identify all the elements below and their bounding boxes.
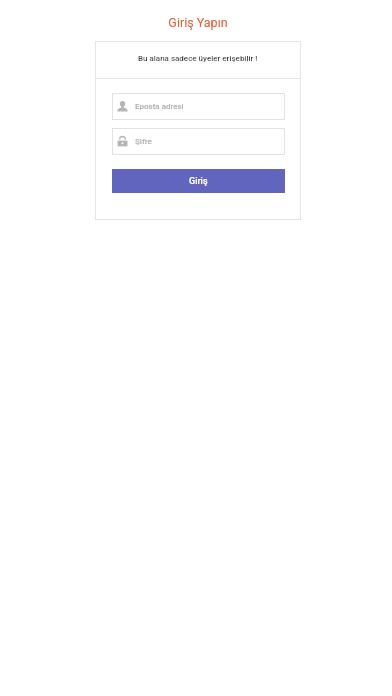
staticText: Giriş <box>189 176 208 187</box>
staticText: Eposta adresi <box>135 102 184 111</box>
other: Password <box>117 136 128 147</box>
staticText: Giriş Yapın <box>2 15 392 30</box>
other: User <box>117 101 128 112</box>
button[interactable]: User <box>112 93 285 120</box>
staticText: Bu alana sadece üyeler erişebilir ! <box>138 54 258 63</box>
button[interactable]: Password <box>112 128 285 155</box>
button[interactable]: Giriş <box>112 169 285 193</box>
staticText: Şifre <box>135 137 152 146</box>
